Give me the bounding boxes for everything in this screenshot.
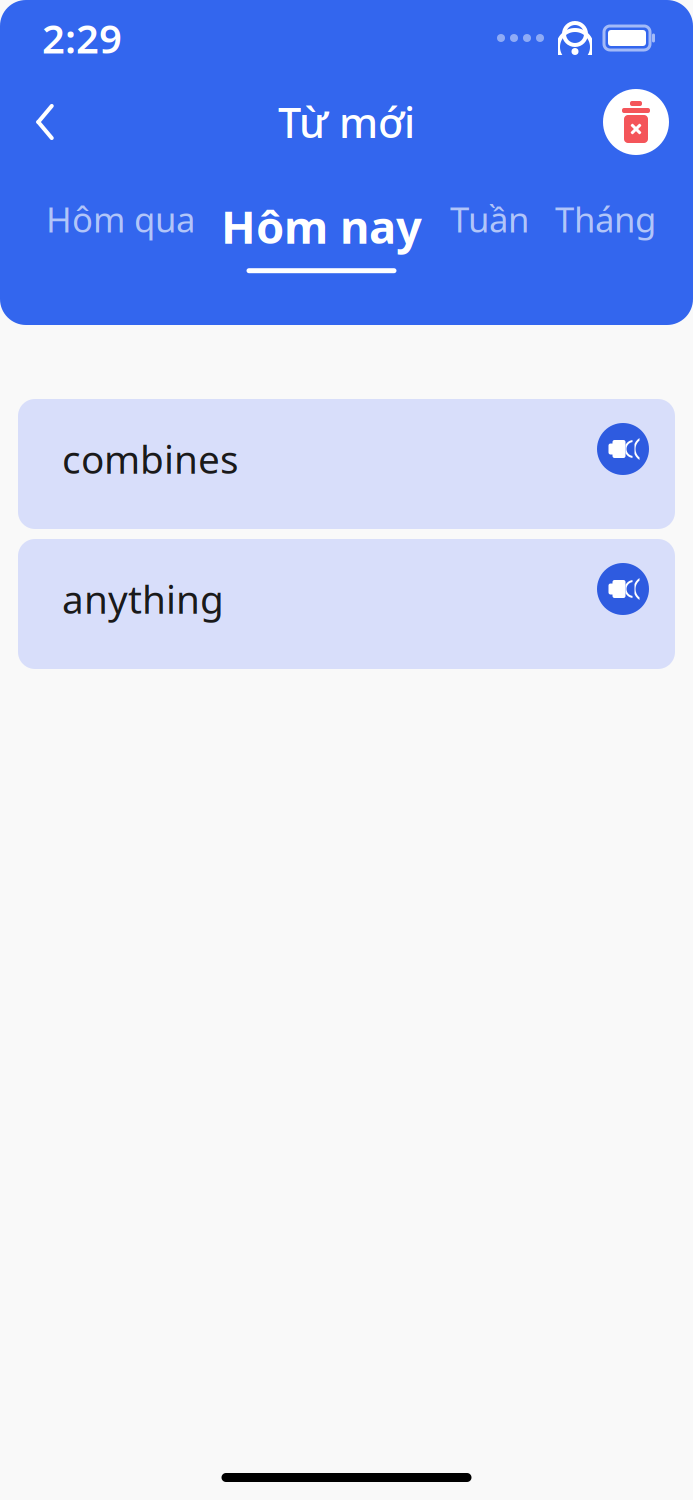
button[interactable]: anything (18, 539, 675, 669)
button[interactable]: Play pronunciation of anything (597, 539, 675, 615)
button[interactable]: Tháng (555, 196, 656, 259)
button[interactable]: Play pronunciation of combines (597, 399, 675, 475)
staticText: anything (62, 573, 224, 624)
staticText: Hôm qua (46, 196, 195, 242)
staticText: Tháng (555, 196, 656, 242)
button[interactable]: Back (12, 89, 78, 155)
button[interactable]: Tuần (450, 196, 529, 259)
button[interactable]: combines (18, 399, 675, 529)
staticText: combines (62, 433, 239, 484)
staticText: Hôm nay (221, 196, 422, 256)
button[interactable]: Hôm nay (221, 196, 422, 273)
staticText: Tuần (450, 196, 529, 242)
staticText: Từ mới (278, 95, 415, 149)
button[interactable]: Hôm qua (46, 196, 195, 259)
staticText: 2:29 (42, 11, 122, 64)
button[interactable]: Delete all (603, 89, 669, 155)
